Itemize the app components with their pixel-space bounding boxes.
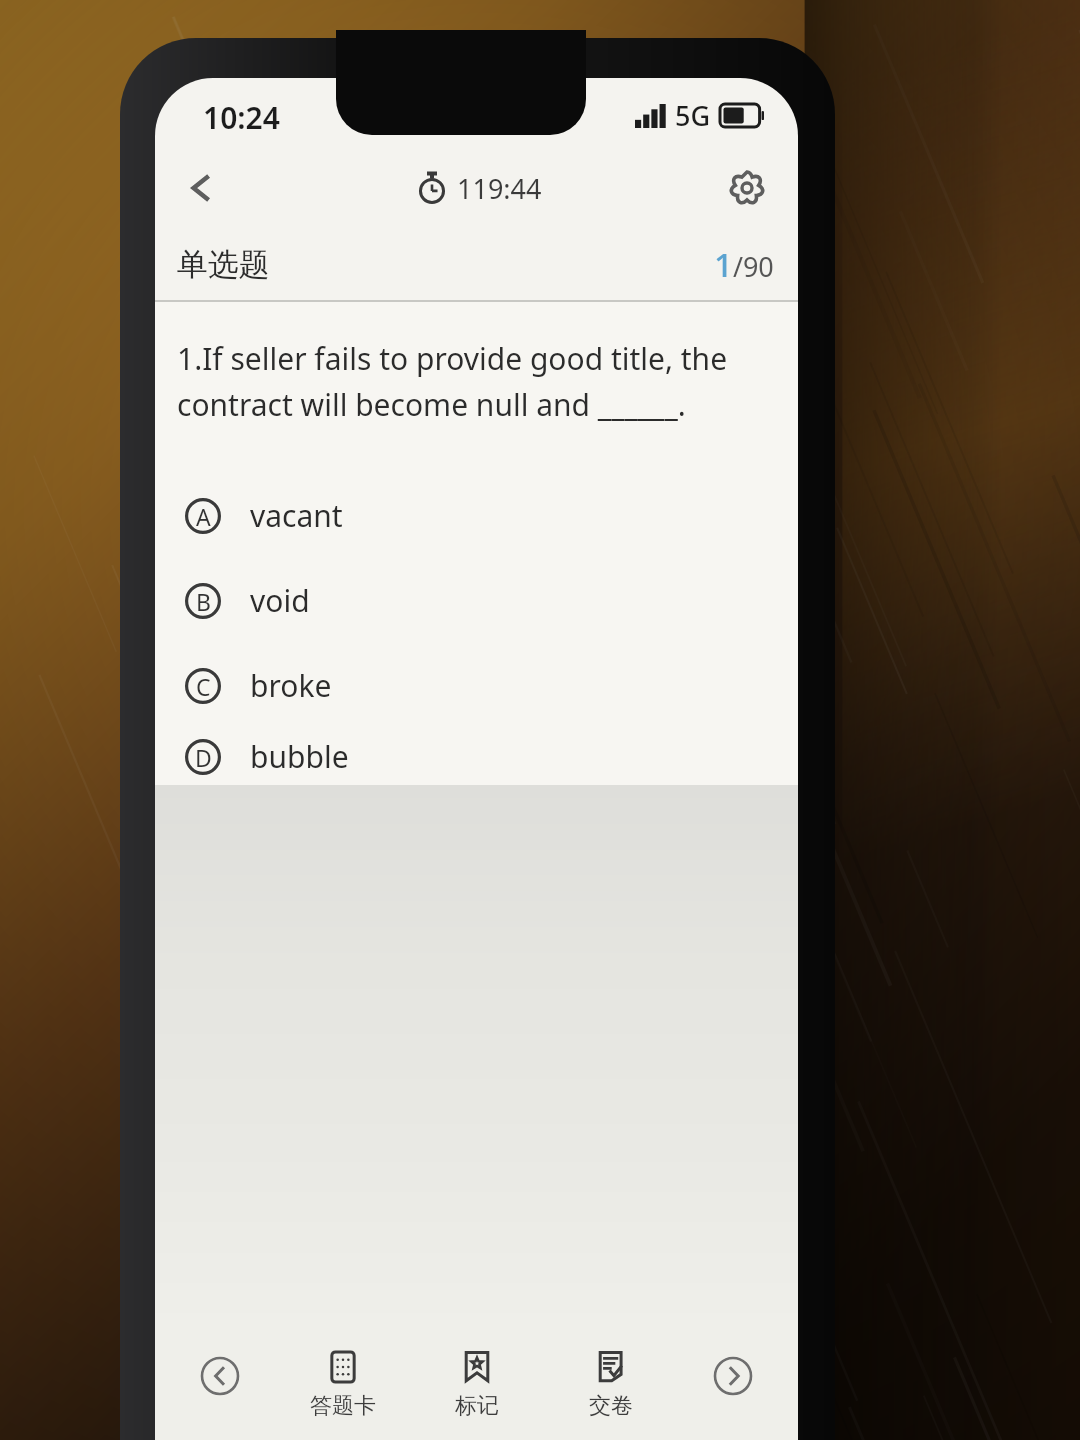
staticText: bubble (250, 736, 349, 777)
staticText: 10:24 (203, 97, 280, 138)
staticText: 1.If seller fails to provide good title,… (177, 338, 768, 425)
button[interactable]: A (155, 473, 798, 558)
staticText: 答题卡 (310, 1392, 376, 1420)
button[interactable]: D (155, 728, 798, 785)
staticText: C (196, 671, 211, 702)
button[interactable]: Settings (714, 155, 780, 221)
staticText: vacant (250, 495, 343, 536)
button[interactable]: Next question (678, 1328, 788, 1440)
button[interactable]: 标记 (410, 1328, 544, 1440)
button[interactable]: 交卷 (544, 1328, 678, 1440)
staticText: void (250, 580, 310, 621)
staticText: 交卷 (589, 1392, 633, 1420)
button[interactable]: Previous question (165, 1328, 275, 1440)
button[interactable]: 119:44 (416, 170, 542, 207)
staticText: 单选题 (177, 245, 270, 284)
staticText: B (196, 586, 211, 617)
button[interactable]: C (155, 643, 798, 728)
staticText: 1/90 (714, 242, 774, 287)
staticText: A (196, 501, 211, 532)
staticText: 119:44 (457, 170, 542, 207)
staticText: 5G (675, 97, 711, 134)
button[interactable]: 答题卡 (275, 1328, 410, 1440)
button[interactable]: B (155, 558, 798, 643)
button[interactable]: Back (167, 153, 237, 223)
staticText: D (195, 742, 212, 773)
staticText: broke (250, 665, 332, 706)
staticText: 标记 (455, 1392, 499, 1420)
